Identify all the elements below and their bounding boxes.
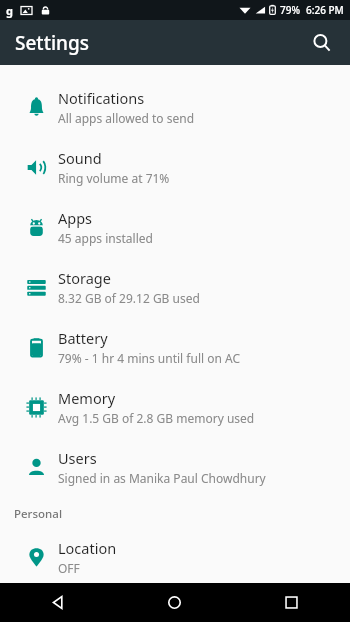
staticText: OFF — [58, 560, 80, 576]
staticText: Storage — [58, 268, 111, 288]
staticText: g — [6, 3, 13, 18]
button[interactable]: Back — [0, 583, 116, 622]
staticText: 8.32 GB of 29.12 GB used — [58, 290, 200, 306]
button[interactable]: Notifications — [0, 77, 350, 137]
staticText: Apps — [58, 208, 93, 228]
staticText: Ring volume at 71% — [58, 170, 170, 186]
staticText: Memory — [58, 388, 116, 408]
button[interactable]: Location — [0, 531, 350, 583]
button[interactable]: Users — [0, 437, 350, 497]
staticText: Users — [58, 448, 97, 468]
staticText: 79% - 1 hr 4 mins until full on AC — [58, 350, 241, 366]
staticText: 6:26 PM — [306, 3, 344, 17]
staticText: Settings — [15, 30, 89, 56]
button[interactable]: Sound — [0, 137, 350, 197]
staticText: Location — [58, 538, 117, 558]
button[interactable]: Home — [116, 583, 233, 622]
staticText: 79% — [280, 3, 300, 17]
staticText: Notifications — [58, 88, 145, 108]
staticText: All apps allowed to send — [58, 110, 195, 126]
button[interactable]: Recent apps — [233, 583, 350, 622]
button[interactable]: Apps — [0, 197, 350, 257]
staticText: Avg 1.5 GB of 2.8 GB memory used — [58, 410, 255, 426]
staticText: Battery — [58, 328, 108, 348]
button[interactable]: Memory — [0, 377, 350, 437]
staticText: Sound — [58, 148, 102, 168]
button[interactable]: Search — [302, 23, 342, 63]
button[interactable]: Storage — [0, 257, 350, 317]
staticText: Personal — [14, 506, 62, 522]
staticText: 45 apps installed — [58, 230, 153, 246]
staticText: Signed in as Manika Paul Chowdhury — [58, 470, 266, 486]
button[interactable]: Battery — [0, 317, 350, 377]
